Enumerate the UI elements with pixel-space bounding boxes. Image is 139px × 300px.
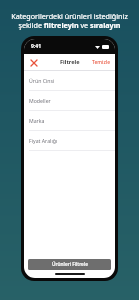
staticText: Ürünleri Filtrele (52, 261, 88, 268)
button[interactable]: Temizle (88, 56, 115, 69)
staticText: Marka (29, 117, 45, 124)
staticText: 9:41 (31, 43, 41, 50)
staticText: Modeller (29, 97, 51, 104)
staticText: Temizle (92, 59, 111, 66)
button[interactable]: Modeller (24, 91, 115, 111)
button[interactable]: Ürün Cinsi (24, 71, 115, 91)
button[interactable]: Kapat (27, 56, 40, 69)
button[interactable]: Fiyat Aralığı (24, 131, 115, 151)
button[interactable]: Ürünleri Filtrele (28, 259, 111, 270)
staticText: Ürün Cinsi (29, 77, 55, 84)
staticText: Kategorilerdeki ürünleri istediğiniz şek… (8, 11, 131, 31)
staticText: Fiyat Aralığı (29, 137, 58, 144)
staticText: Filtrele (60, 58, 80, 66)
button[interactable]: Marka (24, 111, 115, 131)
